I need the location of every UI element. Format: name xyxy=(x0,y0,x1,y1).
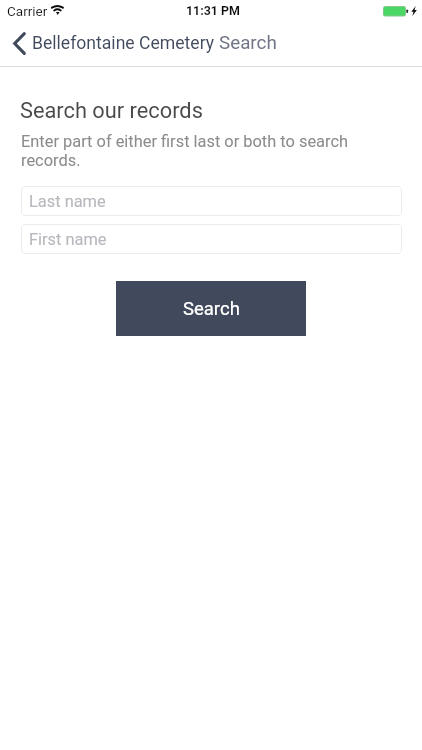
button[interactable]: Search xyxy=(116,281,306,336)
staticText: Enter part of either first last or both … xyxy=(21,132,356,170)
staticText: Search xyxy=(183,298,240,320)
button[interactable]: Back xyxy=(11,30,269,56)
staticText: 11:31 PM xyxy=(186,3,240,18)
other: Battery charging xyxy=(383,6,409,17)
staticText: Search our records xyxy=(20,98,203,124)
staticText: Search xyxy=(219,32,277,54)
staticText: First name xyxy=(29,230,107,249)
staticText: Bellefontaine Cemetery xyxy=(32,33,215,54)
button[interactable]: First name xyxy=(21,224,402,254)
button[interactable]: Last name xyxy=(21,186,402,216)
staticText: Carrier xyxy=(7,3,48,19)
other: Back xyxy=(11,30,28,56)
staticText: Last name xyxy=(29,192,106,211)
